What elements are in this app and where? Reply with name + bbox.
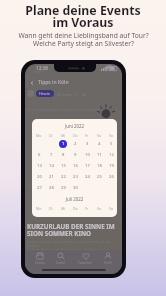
button[interactable]: 25: [95, 173, 103, 181]
staticText: Morgen: [57, 92, 72, 97]
staticText: 17: [85, 163, 90, 169]
staticText: Mo: [36, 133, 42, 138]
button[interactable]: 24: [83, 173, 91, 181]
button[interactable]: 20: [35, 173, 43, 181]
button[interactable]: Filter: [26, 89, 35, 98]
button[interactable]: 12: [107, 151, 115, 159]
staticText: KURZURLAUB DER SINNE IM SION SOMMER KINO: [27, 222, 115, 237]
button[interactable]: 8: [59, 151, 67, 159]
staticText: Plane deine Events im Voraus: [25, 2, 141, 31]
button[interactable]: Events: [34, 252, 46, 265]
staticText: Wann geht deine Lieblingsband auf Tour? …: [18, 31, 149, 48]
staticText: 15: [61, 163, 66, 169]
staticText: 21: [49, 174, 54, 180]
button[interactable]: 3: [83, 140, 91, 148]
staticText: Events: [35, 261, 45, 265]
staticText: 4: [98, 141, 101, 147]
staticText: 26: [109, 174, 114, 180]
button[interactable]: Morgen: [57, 90, 72, 98]
button[interactable]: Sa: [82, 90, 87, 98]
button[interactable]: 15: [59, 162, 67, 170]
staticText: 3: [86, 141, 89, 147]
staticText: Heute: [39, 91, 51, 96]
button[interactable]: 23: [71, 173, 79, 181]
staticText: Fr: [75, 92, 79, 97]
staticText: So: [109, 133, 114, 138]
staticText: Di: [49, 133, 53, 138]
button[interactable]: 17: [83, 162, 91, 170]
button[interactable]: 29: [59, 184, 67, 192]
staticText: Juni 2022: [32, 123, 117, 129]
staticText: 9: [74, 152, 77, 158]
button[interactable]: Heute: [36, 90, 54, 97]
button[interactable]: Fr: [75, 90, 79, 98]
button[interactable]: Suche: [55, 252, 67, 265]
button[interactable]: 21: [47, 173, 55, 181]
staticText: Do: [73, 206, 78, 211]
staticText: Fr: [85, 206, 89, 211]
staticText: 1: [62, 141, 65, 147]
staticText: Mo: [36, 206, 42, 211]
staticText: 7: [50, 152, 53, 158]
staticText: 29: [61, 185, 66, 191]
staticText: 24: [85, 174, 90, 180]
button[interactable]: 27: [35, 184, 43, 192]
staticText: 6: [38, 152, 41, 158]
staticText: Kult Sommertanzen, heute findet der Jaz.…: [27, 107, 103, 112]
staticText: 27: [37, 185, 42, 191]
button[interactable]: 6: [35, 151, 43, 159]
button[interactable]: 30: [71, 184, 79, 192]
button[interactable]: Profil: [103, 252, 113, 265]
staticText: So: [109, 206, 114, 211]
button[interactable]: 13: [35, 162, 43, 170]
staticText: Mi: [61, 133, 66, 138]
staticText: 20: [37, 174, 42, 180]
button[interactable]: 4: [95, 140, 103, 148]
button[interactable]: Favoriten: [77, 252, 94, 265]
button[interactable]: 26: [107, 173, 115, 181]
staticText: 10: [85, 152, 90, 158]
button[interactable]: 9: [71, 151, 79, 159]
staticText: 11: [97, 152, 102, 158]
button[interactable]: 7: [47, 151, 55, 159]
staticText: 30: [73, 185, 78, 191]
staticText: 16: [73, 163, 78, 169]
staticText: 5: [110, 141, 113, 147]
button[interactable]: Back: [27, 78, 36, 87]
staticText: 23: [73, 174, 78, 180]
staticText: 8: [62, 152, 65, 158]
staticText: Suche: [56, 261, 66, 265]
staticText: Fr: [85, 133, 89, 138]
staticText: 18: [97, 163, 102, 169]
button[interactable]: 5: [107, 140, 115, 148]
staticText: 12:38: [36, 65, 48, 71]
staticText: 19: [109, 163, 114, 169]
staticText: 25: [97, 174, 102, 180]
staticText: Sa: [97, 133, 101, 138]
staticText: Tipps in Köln: [38, 79, 69, 86]
staticText: Im Innenhof des Kulturzentrums verwandel…: [27, 239, 119, 256]
staticText: Do: [73, 133, 78, 138]
staticText: 22: [61, 174, 66, 180]
staticText: Favoriten: [78, 261, 93, 265]
button[interactable]: 1: [59, 140, 67, 148]
button[interactable]: 14: [47, 162, 55, 170]
staticText: Mi: [61, 206, 66, 211]
button[interactable]: 19: [107, 162, 115, 170]
staticText: 13: [37, 163, 42, 169]
button[interactable]: 16: [71, 162, 79, 170]
button[interactable]: 11: [95, 151, 103, 159]
button[interactable]: 22: [59, 173, 67, 181]
staticText: Profil: [104, 261, 112, 265]
staticText: 12: [109, 152, 114, 158]
button[interactable]: 10: [83, 151, 91, 159]
staticText: 2: [74, 141, 77, 147]
staticText: Di: [49, 206, 53, 211]
staticText: Sa: [82, 92, 87, 97]
button[interactable]: 18: [95, 162, 103, 170]
staticText: 28: [49, 185, 54, 191]
staticText: PayPal: [34, 70, 44, 74]
staticText: 14: [49, 163, 54, 169]
button[interactable]: 28: [47, 184, 55, 192]
button[interactable]: 2: [71, 140, 79, 148]
